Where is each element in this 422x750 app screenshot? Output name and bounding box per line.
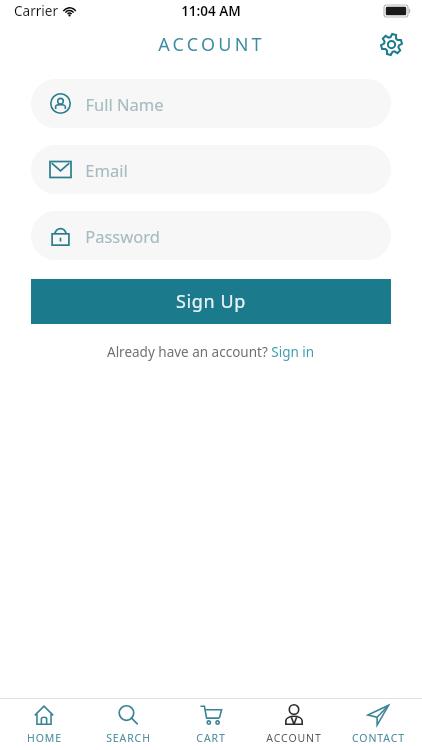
- staticText: SEARCH: [106, 731, 151, 745]
- staticText: Password: [85, 225, 160, 247]
- button[interactable]: CONTACT: [339, 700, 417, 749]
- staticText: Full Name: [85, 93, 164, 115]
- staticText: CART: [196, 731, 226, 745]
- button[interactable]: ACCOUNT: [255, 700, 333, 749]
- button[interactable]: Already have an account? Sign in: [101, 341, 321, 363]
- button[interactable]: SEARCH: [89, 700, 167, 749]
- button[interactable]: Sign Up: [31, 279, 391, 324]
- staticText: Sign Up: [176, 289, 246, 314]
- button[interactable]: HOME: [5, 700, 83, 749]
- button[interactable]: Email: [31, 145, 391, 194]
- staticText: Email: [85, 159, 128, 181]
- staticText: HOME: [27, 731, 62, 745]
- staticText: 11:04 AM: [181, 2, 241, 20]
- staticText: ACCOUNT: [266, 731, 322, 745]
- button[interactable]: Settings: [374, 27, 408, 61]
- staticText: Already have an account? Sign in: [107, 343, 315, 361]
- staticText: ACCOUNT: [158, 32, 265, 57]
- button[interactable]: Password: [31, 211, 391, 260]
- button[interactable]: CART: [172, 700, 250, 749]
- button[interactable]: Full Name: [31, 79, 391, 128]
- staticText: Carrier: [14, 2, 58, 20]
- staticText: CONTACT: [352, 731, 405, 745]
